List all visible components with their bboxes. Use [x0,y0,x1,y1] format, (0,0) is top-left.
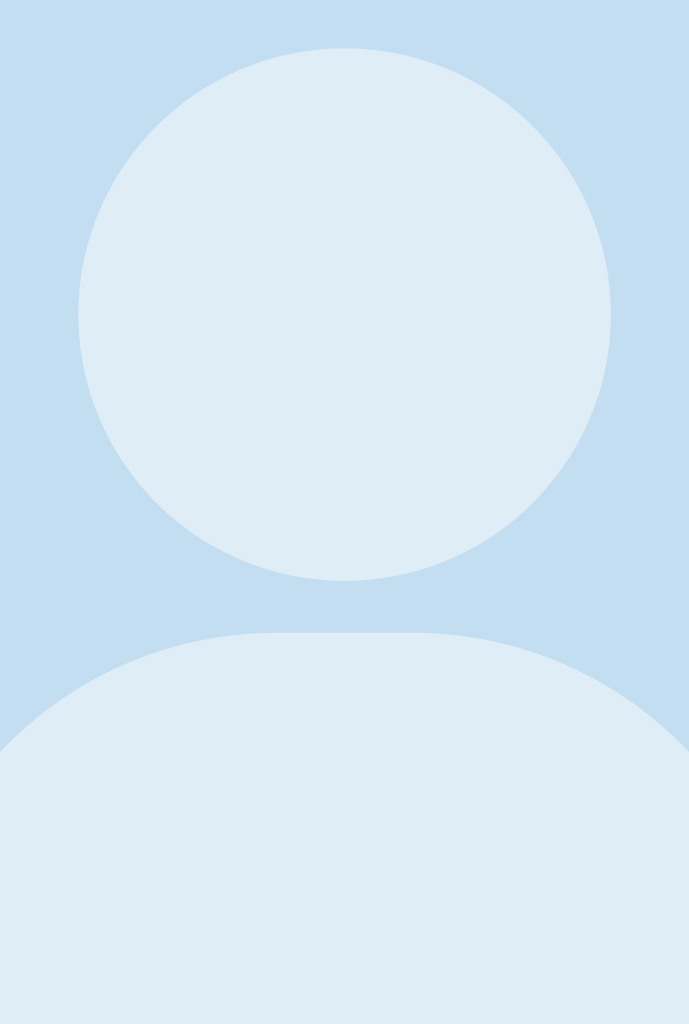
button[interactable]: Profile photo [0,0,689,1024]
